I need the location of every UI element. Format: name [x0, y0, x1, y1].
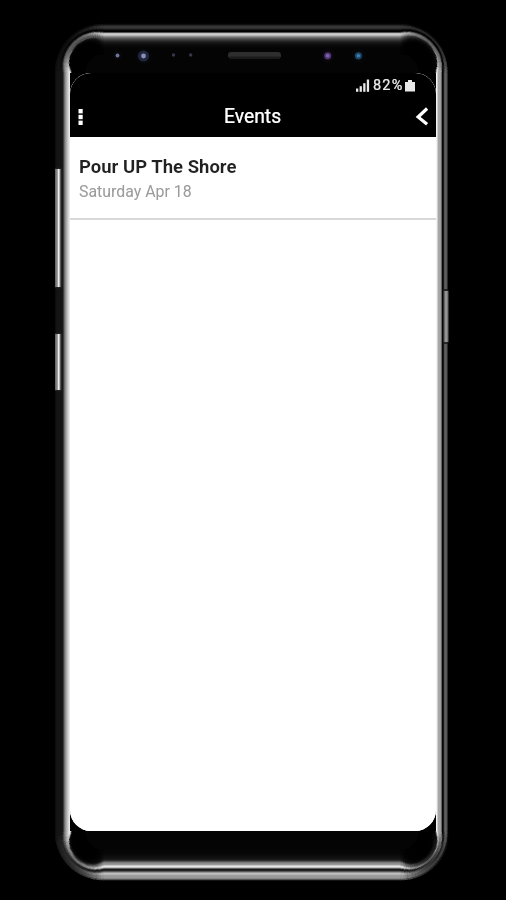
staticText: Saturday Apr 18 [79, 182, 192, 201]
staticText: Pour UP The Shore [79, 156, 237, 178]
staticText: 82% [373, 77, 404, 94]
staticText: Events [224, 105, 282, 128]
button[interactable]: Back [406, 98, 436, 137]
button[interactable]: Pour UP The Shore [70, 137, 436, 218]
button[interactable]: More options [70, 98, 102, 137]
